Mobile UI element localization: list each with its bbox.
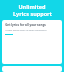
staticText: Unlimited — [18, 3, 46, 10]
staticText: Lorem ipsum dolor sit amet consectetur — [5, 29, 47, 32]
staticText: Get lyrics for all your songs — [5, 23, 46, 27]
staticText: Lyrics support — [13, 10, 52, 17]
